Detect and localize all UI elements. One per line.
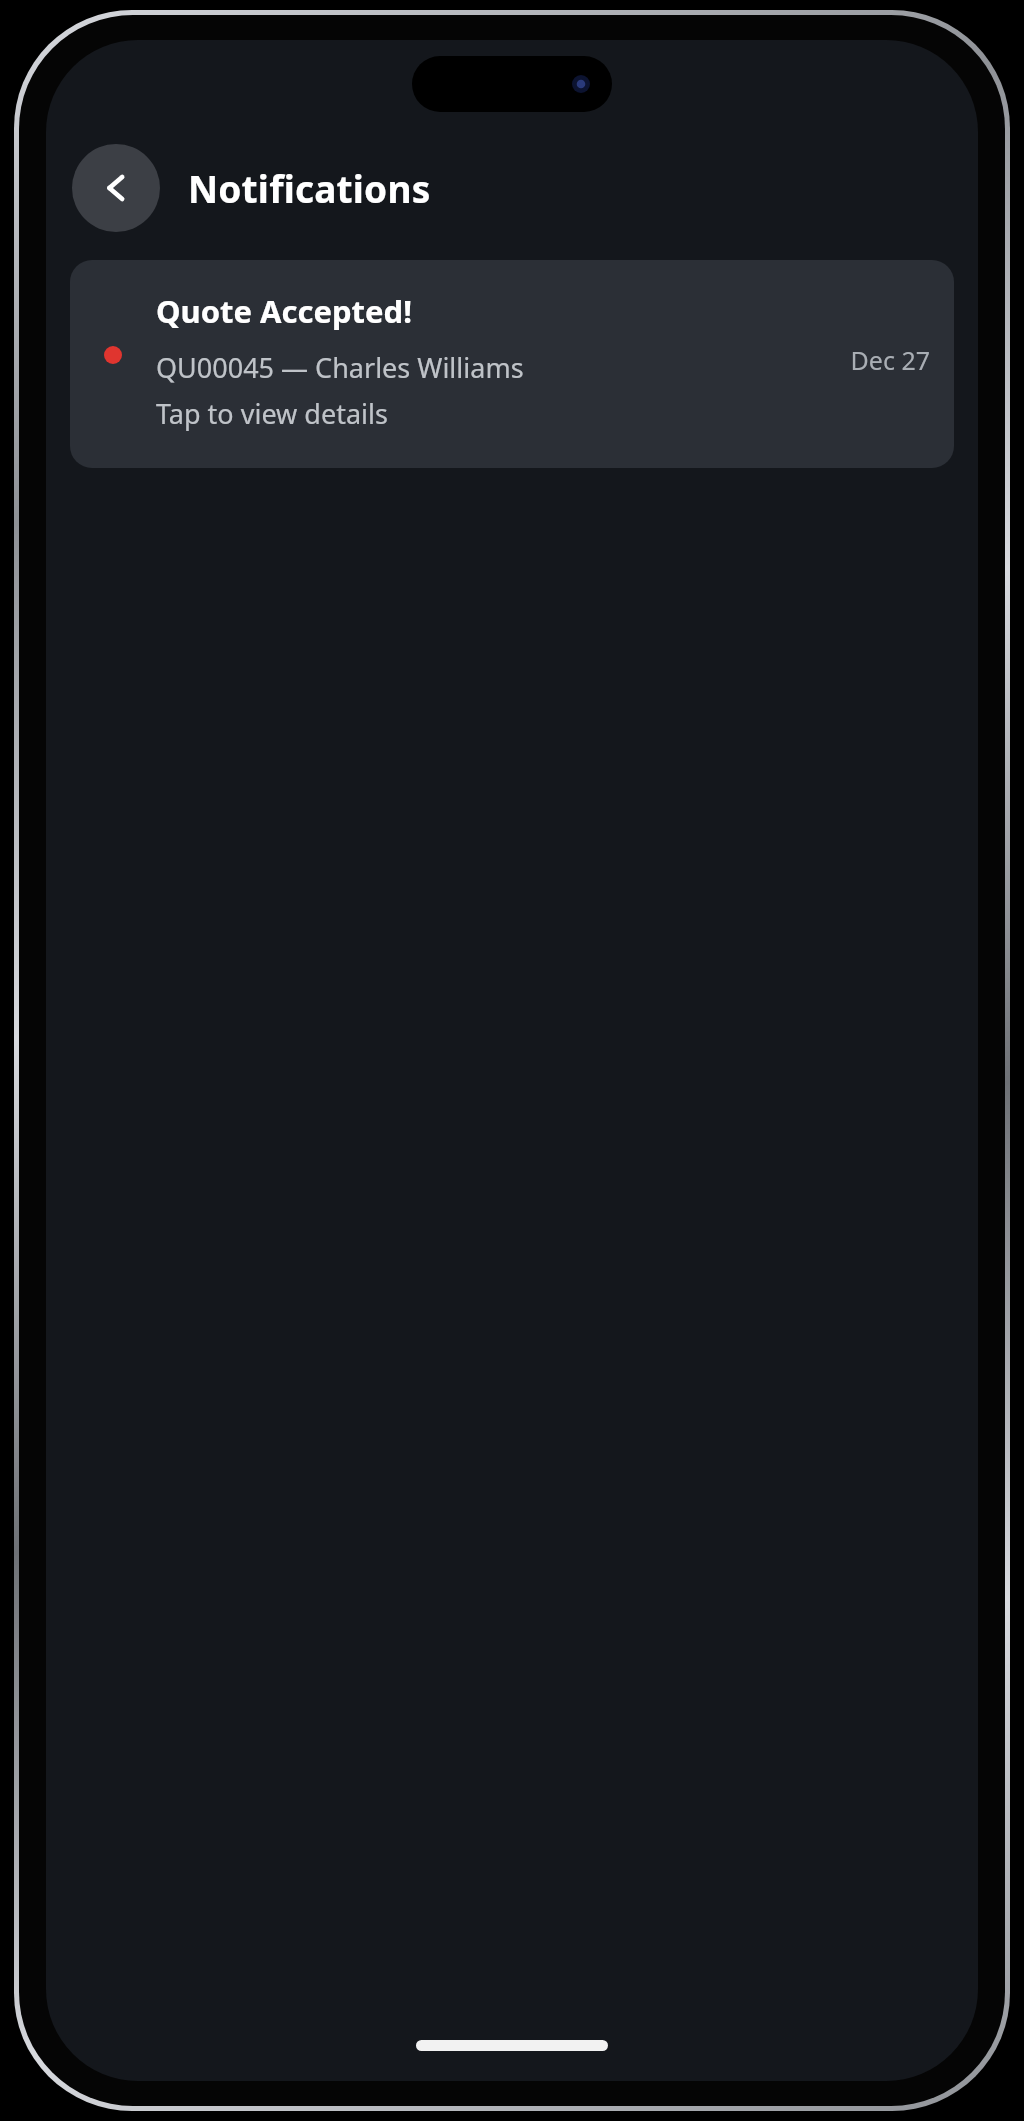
staticText: QU00045 — Charles Williams (156, 349, 524, 386)
staticText: Quote Accepted! (156, 290, 412, 332)
staticText: Tap to view details (156, 395, 388, 432)
button[interactable]: Back (72, 144, 160, 232)
button[interactable]: Quote Accepted! (70, 260, 954, 468)
staticText: Notifications (188, 163, 431, 213)
staticText: Dec 27 (850, 343, 930, 377)
